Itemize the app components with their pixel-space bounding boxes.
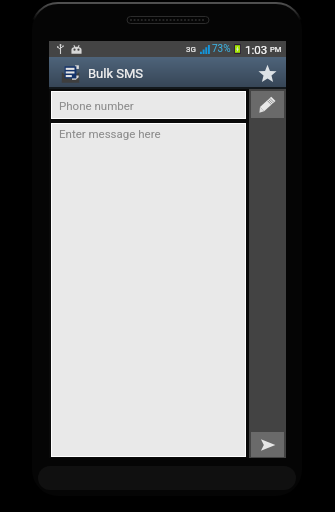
button[interactable]: Pick contact	[251, 91, 284, 118]
staticText: 73%	[212, 43, 231, 55]
staticText: Phone number	[59, 99, 134, 112]
staticText: PM	[270, 45, 282, 54]
staticText: Bulk SMS	[88, 66, 144, 81]
staticText: 3G	[186, 45, 196, 54]
staticText: Enter message here	[59, 127, 161, 140]
button[interactable]: Phone number	[52, 92, 245, 118]
button[interactable]: Enter message here	[52, 124, 245, 456]
staticText: 1:03	[245, 43, 268, 56]
button[interactable]: Send	[251, 432, 284, 457]
button[interactable]: Favorite	[251, 57, 283, 89]
